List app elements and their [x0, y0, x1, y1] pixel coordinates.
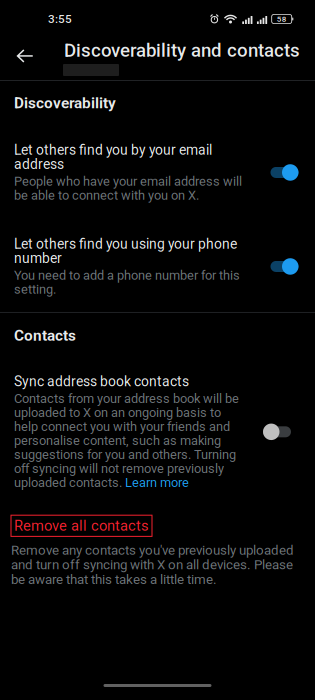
staticText: 58 [277, 14, 287, 24]
button[interactable]: Remove all contacts [11, 515, 152, 536]
staticText: 3:55 [48, 12, 72, 26]
staticText: Discoverability and contacts [64, 39, 300, 61]
staticText: Contacts from your address book will be … [14, 391, 239, 490]
staticText: Remove all contacts [14, 517, 149, 534]
button[interactable]: Sync address book contacts [0, 373, 315, 490]
staticText: Let others find you by your email addres… [14, 142, 212, 172]
button[interactable]: Let others find you using your phone num… [0, 236, 315, 297]
staticText: You need to add a phone number for this … [14, 268, 240, 297]
button[interactable]: Let others find you by your email addres… [0, 142, 315, 203]
staticText: Discoverability [14, 94, 116, 112]
staticText: Let others find you using your phone num… [14, 236, 237, 266]
staticText: Sync address book contacts [14, 373, 189, 390]
staticText: Contacts [14, 326, 76, 344]
staticText: People who have your email address will … [14, 174, 242, 203]
staticText: Remove any contacts you've previously up… [11, 542, 294, 587]
button[interactable]: Back [8, 43, 42, 69]
